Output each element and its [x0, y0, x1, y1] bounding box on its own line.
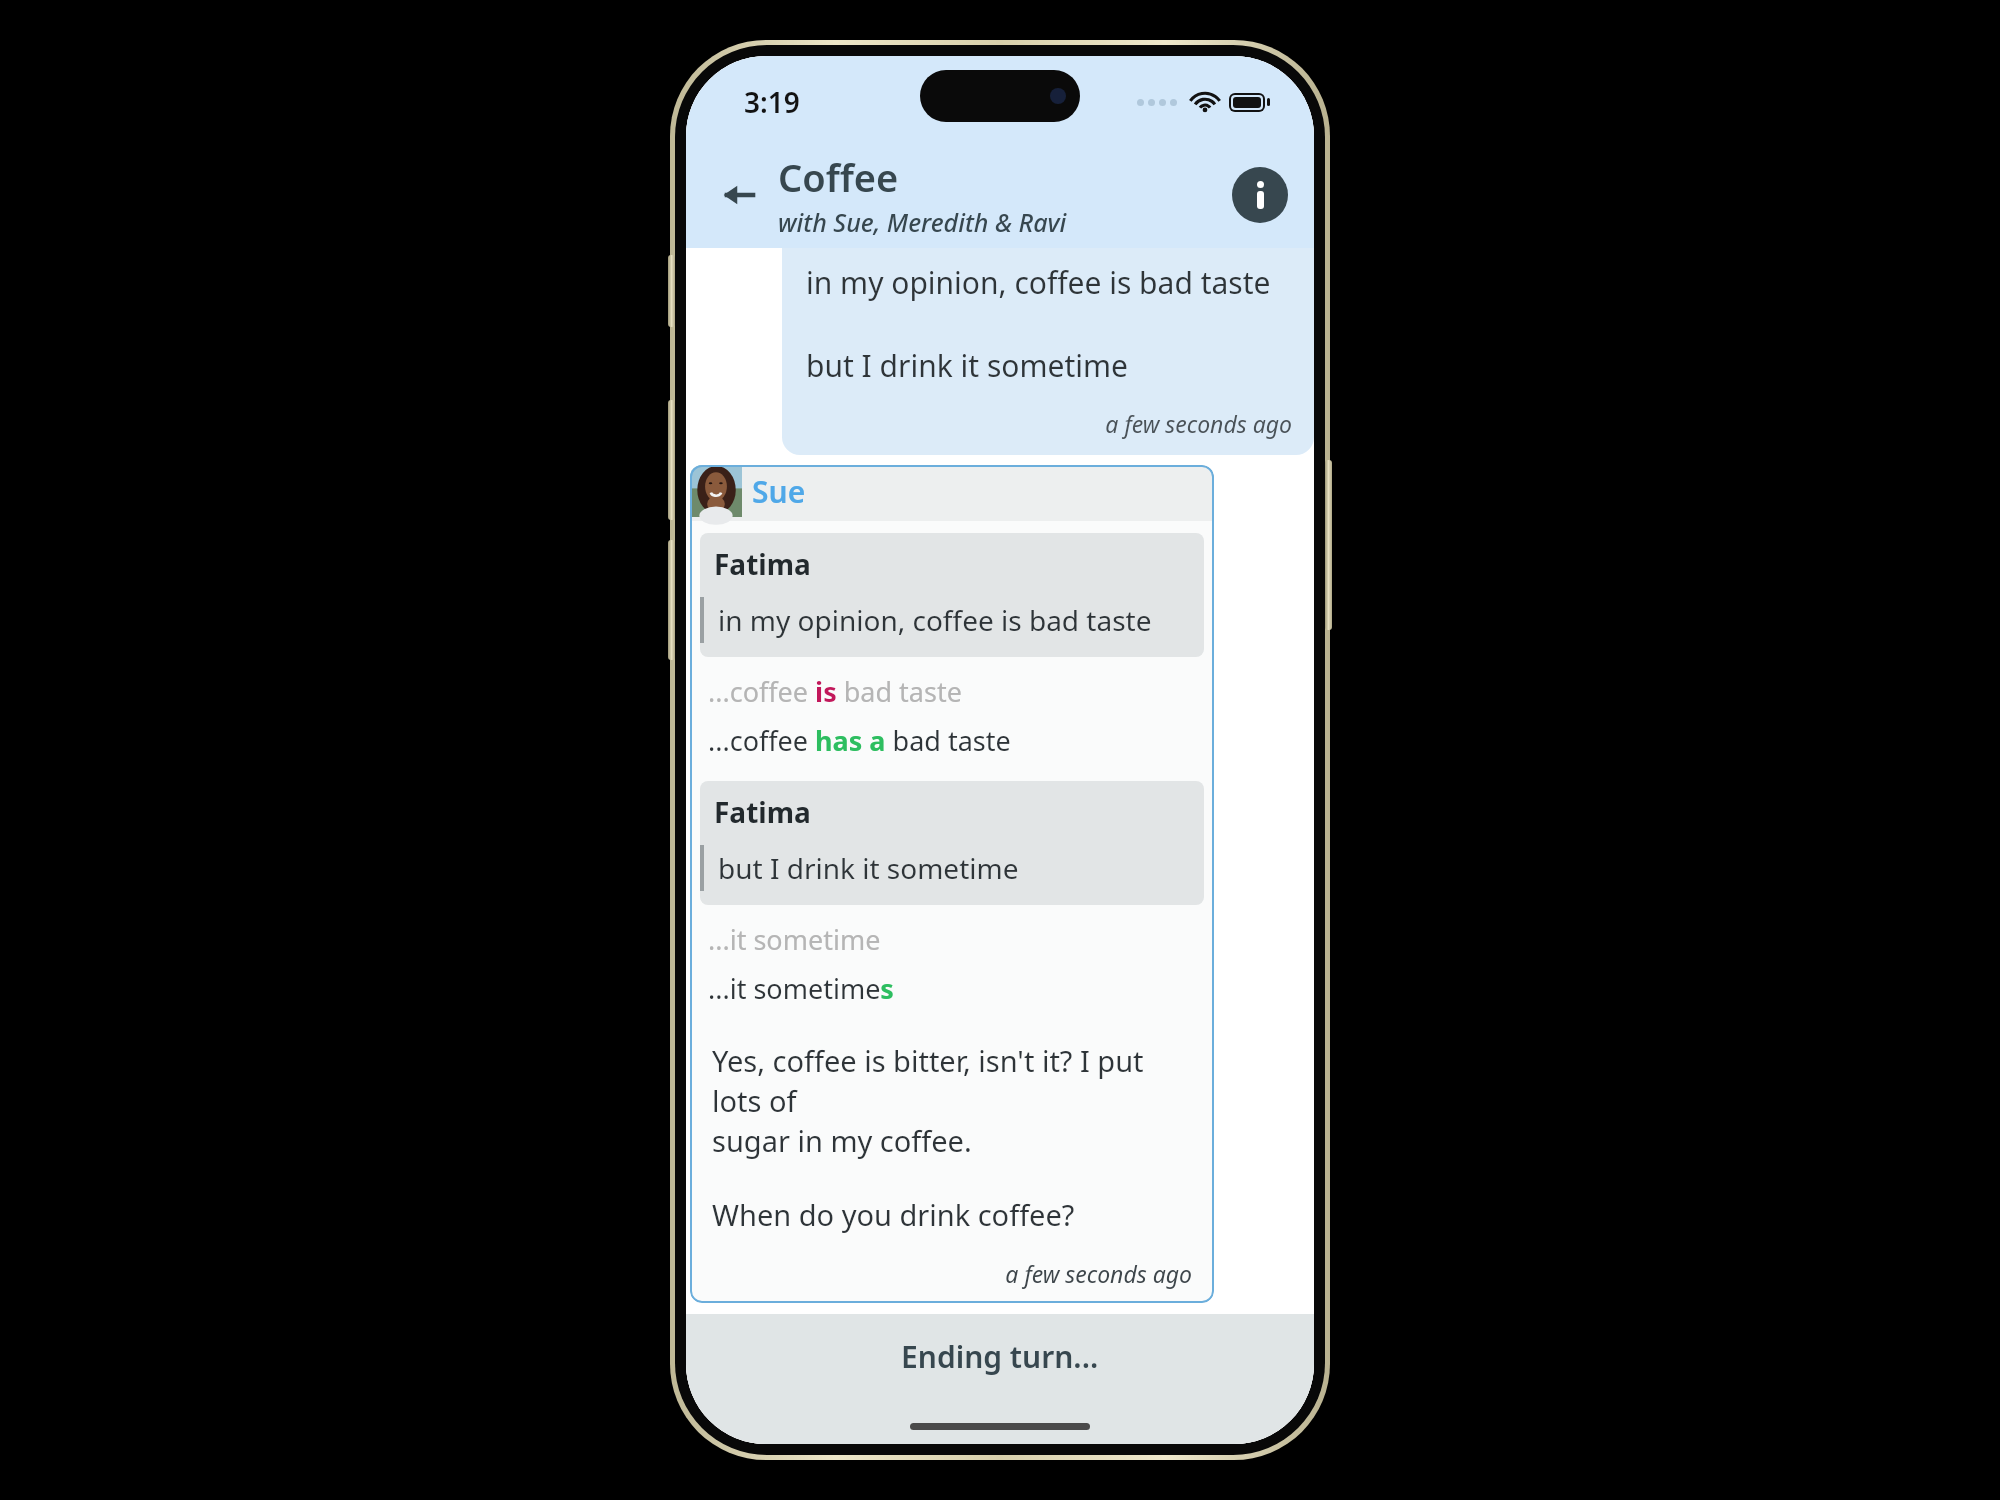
staticText: in my opinion, coffee is bad taste	[806, 262, 1271, 303]
staticText: ...it sometimes	[708, 970, 894, 1007]
staticText: a few seconds ago	[712, 1258, 1192, 1289]
staticText: 3:19	[744, 83, 800, 121]
staticText: but I drink it sometime	[718, 849, 1019, 887]
button[interactable]: Ending turn...	[686, 1314, 1314, 1444]
staticText: but I drink it sometime	[806, 345, 1128, 386]
staticText: ...coffee has a bad taste	[708, 722, 1011, 759]
staticText: ...it sometime	[708, 921, 881, 958]
button[interactable]: Info	[1232, 167, 1288, 223]
staticText: Sue	[752, 471, 806, 512]
staticText: Coffee	[778, 151, 899, 203]
staticText: Fatima	[714, 793, 811, 831]
staticText: ...coffee is bad taste	[708, 673, 962, 710]
button[interactable]: Sue	[690, 465, 1214, 1303]
staticText: Yes, coffee is bitter, isn't it? I put l…	[712, 1041, 1192, 1161]
button[interactable]: Back	[712, 167, 768, 223]
staticText: a few seconds ago	[806, 408, 1292, 439]
staticText: When do you drink coffee?	[712, 1195, 1075, 1234]
staticText: Fatima	[714, 545, 811, 583]
staticText: Ending turn...	[901, 1336, 1099, 1377]
staticText: in my opinion, coffee is bad taste	[718, 601, 1152, 639]
staticText: with Sue, Meredith & Ravi	[778, 205, 1067, 239]
